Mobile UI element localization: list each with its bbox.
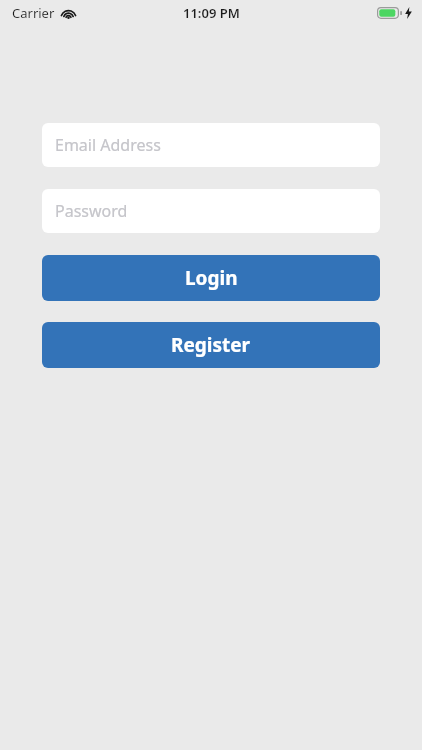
button[interactable]: Email Address [42, 123, 380, 167]
staticText: Password [55, 200, 128, 222]
staticText: Email Address [55, 134, 161, 156]
staticText: 11:09 PM [183, 4, 240, 22]
button[interactable]: Register [42, 322, 380, 368]
staticText: Login [185, 265, 238, 291]
button[interactable]: Password [42, 189, 380, 233]
staticText: Carrier [12, 4, 55, 22]
staticText: Register [171, 332, 251, 358]
button[interactable]: Login [42, 255, 380, 301]
